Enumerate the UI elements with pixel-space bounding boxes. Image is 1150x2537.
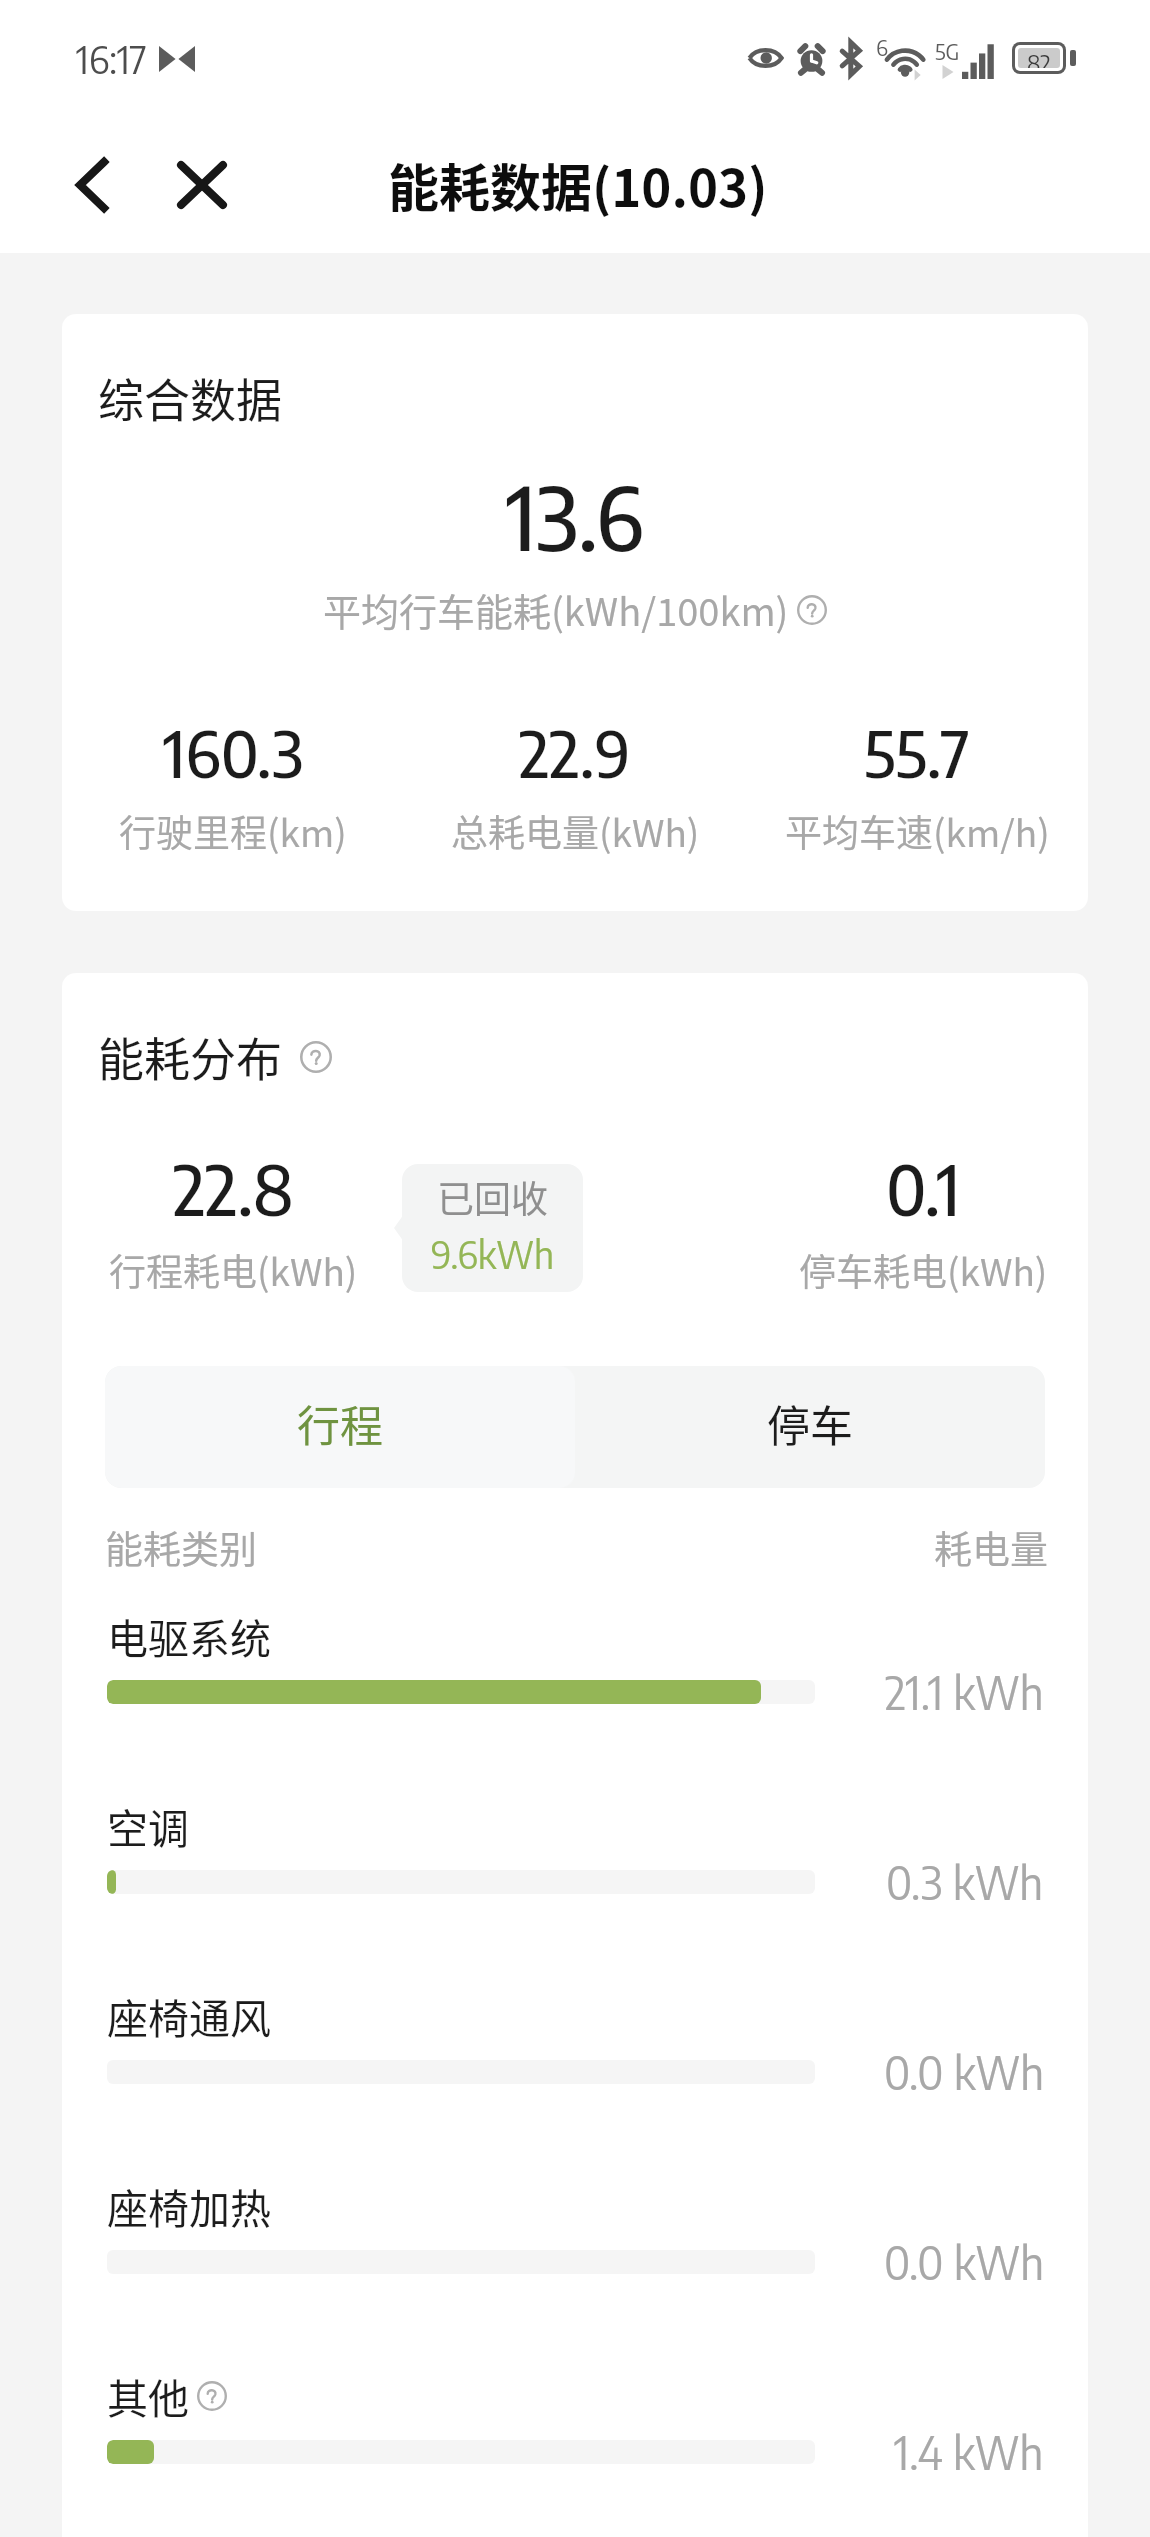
staticText: 6 <box>876 33 888 61</box>
button[interactable]: Close <box>160 143 244 227</box>
staticText: 停车 <box>767 1392 853 1454</box>
button[interactable]: 座椅通风 <box>62 1966 1088 2098</box>
staticText: 平均车速(km/h) <box>785 804 1050 858</box>
staticText: 行驶里程(km) <box>119 804 347 858</box>
staticText: 座椅加热 <box>107 2176 271 2235</box>
staticText: 9.6kWh <box>431 1230 555 1277</box>
staticText: 0.1 <box>886 1146 960 1231</box>
button[interactable]: Help <box>197 2381 227 2411</box>
button[interactable]: Help <box>797 595 827 625</box>
staticText: 82 <box>1027 48 1051 68</box>
staticText: 0.0 kWh <box>884 2234 1044 2290</box>
staticText: 能耗分布 <box>98 1023 282 1090</box>
staticText: 平均行车能耗(kWh/100km) <box>323 582 789 637</box>
button[interactable]: 电驱系统 <box>62 1586 1088 1718</box>
staticText: 22.8 <box>173 1146 294 1231</box>
button[interactable]: 其他 <box>62 2346 1088 2478</box>
staticText: 行程 <box>297 1392 383 1454</box>
button[interactable]: Back <box>50 143 134 227</box>
staticText: 55.7 <box>864 712 970 792</box>
button[interactable]: 空调 <box>62 1776 1088 1908</box>
staticText: 空调 <box>107 1796 189 1855</box>
staticText: 1.4 kWh <box>894 2424 1044 2480</box>
staticText: 已回收 <box>437 1170 548 1224</box>
staticText: 13.6 <box>506 461 644 570</box>
staticText: 21.1 kWh <box>885 1664 1044 1720</box>
staticText: 停车耗电(kWh) <box>799 1243 1048 1297</box>
button[interactable]: 座椅加热 <box>62 2156 1088 2288</box>
button[interactable]: Help <box>300 1041 332 1073</box>
button[interactable]: 停车 <box>575 1366 1045 1488</box>
staticText: 22.9 <box>519 712 631 792</box>
staticText: 其他 <box>107 2366 189 2425</box>
staticText: 0.0 kWh <box>884 2044 1044 2100</box>
staticText: 耗电量 <box>934 1519 1049 1574</box>
staticText: 总耗电量(kWh) <box>451 804 700 858</box>
button[interactable]: 行程 <box>105 1366 575 1488</box>
staticText: 行程耗电(kWh) <box>109 1243 358 1297</box>
staticText: 电驱系统 <box>107 1606 271 1665</box>
staticText: 能耗类别 <box>105 1519 258 1574</box>
staticText: 座椅通风 <box>107 1986 271 2045</box>
staticText: 16:17 <box>76 35 147 82</box>
staticText: 综合数据 <box>98 364 282 431</box>
staticText: 5G <box>935 37 960 65</box>
staticText: 160.3 <box>163 712 304 792</box>
staticText: 能耗数据(10.03) <box>388 148 768 222</box>
staticText: 0.3 kWh <box>886 1854 1044 1910</box>
